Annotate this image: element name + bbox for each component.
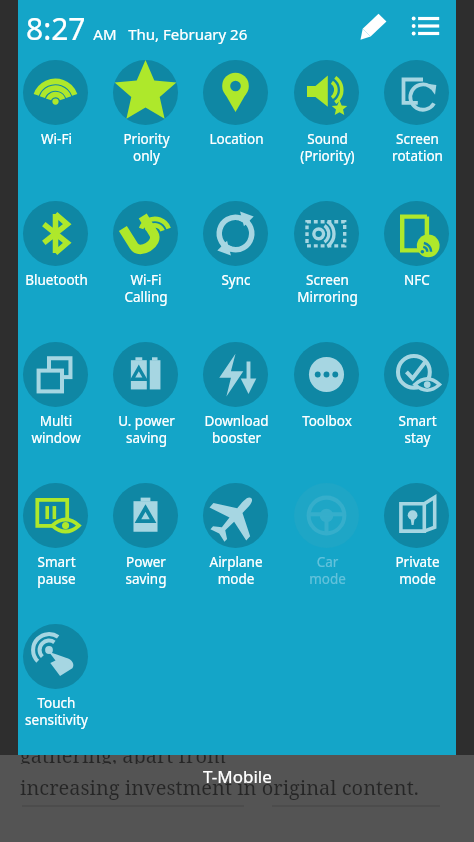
staticText: U. power saving xyxy=(118,412,175,447)
button[interactable]: Wi-Fi Calling xyxy=(101,195,191,307)
staticText: Wi-Fi xyxy=(41,130,72,148)
staticText: Sync xyxy=(221,271,251,289)
button[interactable]: Priority only xyxy=(101,54,191,166)
button[interactable]: Multi window xyxy=(11,336,101,448)
button[interactable]: Power saving xyxy=(101,477,191,589)
staticText: Sound (Priority) xyxy=(300,130,355,165)
button[interactable]: Edit xyxy=(353,4,397,48)
staticText: Wi-Fi Calling xyxy=(124,271,168,306)
staticText: Airplane mode xyxy=(209,553,263,588)
staticText: Priority only xyxy=(123,130,170,165)
button[interactable]: U. power saving xyxy=(101,336,191,448)
staticText: increasing investment in original conten… xyxy=(20,774,419,801)
staticText: Multi window xyxy=(31,412,81,447)
button[interactable]: Smart pause xyxy=(11,477,101,589)
staticText: Touch sensitivity xyxy=(25,694,88,729)
staticText: Download booster xyxy=(204,412,269,447)
button[interactable]: NFC xyxy=(372,195,462,307)
button[interactable]: Wi-Fi xyxy=(11,54,101,166)
staticText: T-Mobile xyxy=(203,765,272,788)
button[interactable]: List view xyxy=(404,4,448,48)
button[interactable]: Smart stay xyxy=(372,336,462,448)
button[interactable]: Private mode xyxy=(372,477,462,589)
button[interactable]: Download booster xyxy=(191,336,281,448)
staticText: NFC xyxy=(404,271,430,289)
staticText: Smart pause xyxy=(37,553,76,588)
staticText: Bluetooth xyxy=(25,271,88,289)
button[interactable]: Screen Mirroring xyxy=(282,195,372,307)
staticText: 8:27 AM Thu, February 26 xyxy=(26,8,248,49)
button[interactable]: Car mode xyxy=(282,477,372,589)
button[interactable]: Airplane mode xyxy=(191,477,281,589)
button[interactable]: Sync xyxy=(191,195,281,307)
staticText: Screen Mirroring xyxy=(297,271,358,306)
button[interactable]: Screen rotation xyxy=(372,54,462,166)
button[interactable]: Touch sensitivity xyxy=(11,618,101,730)
staticText: Toolbox xyxy=(302,412,352,430)
staticText: gathering, apart from xyxy=(20,742,226,764)
staticText: Location xyxy=(209,130,264,148)
button[interactable]: Bluetooth xyxy=(11,195,101,307)
staticText: Power saving xyxy=(125,553,167,588)
button[interactable]: Location xyxy=(191,54,281,166)
staticText: Car mode xyxy=(309,553,346,588)
staticText: Smart stay xyxy=(398,412,437,447)
button[interactable]: Toolbox xyxy=(282,336,372,448)
button[interactable]: Sound (Priority) xyxy=(282,54,372,166)
staticText: Screen rotation xyxy=(392,130,443,165)
staticText: Private mode xyxy=(395,553,440,588)
